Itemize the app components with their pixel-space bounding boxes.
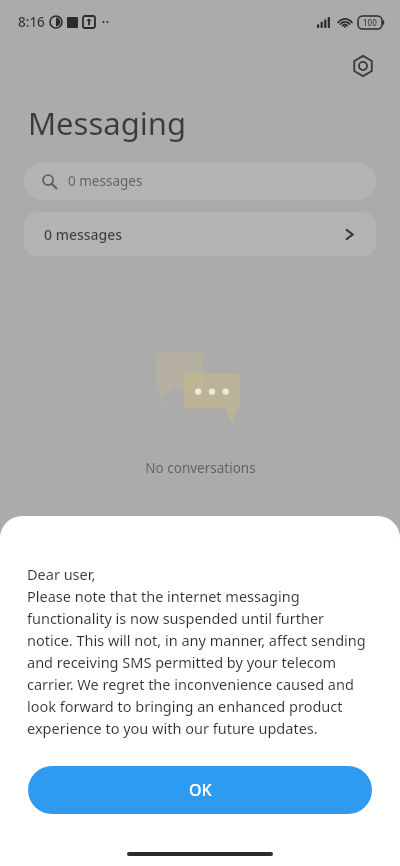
- button[interactable]: OK: [28, 766, 372, 814]
- staticText: Messaging: [28, 102, 186, 144]
- staticText: 0 messages: [44, 225, 123, 244]
- button[interactable]: Settings: [348, 51, 378, 81]
- staticText: 0 messages: [68, 172, 143, 190]
- staticText: OK: [189, 779, 212, 801]
- button[interactable]: 0 messages: [24, 212, 376, 256]
- button[interactable]: 0 messages: [24, 162, 376, 200]
- staticText: Dear user, Please note that the internet…: [27, 564, 373, 738]
- staticText: 100: [363, 17, 377, 28]
- staticText: No conversations: [145, 459, 256, 477]
- staticText: 8:16: [18, 13, 45, 31]
